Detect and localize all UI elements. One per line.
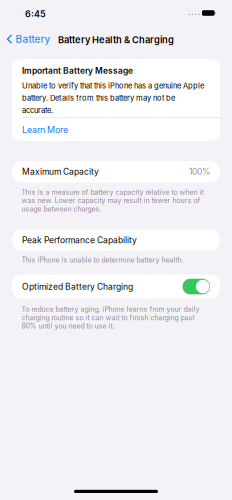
button[interactable]: Optimized Battery Charging: [182, 279, 210, 294]
staticText: Learn More: [22, 124, 68, 135]
staticText: Optimized Battery Charging: [22, 281, 133, 292]
staticText: Battery Health & Charging: [58, 34, 174, 45]
staticText: Battery: [15, 33, 50, 45]
staticText: Maximum Capacity: [22, 167, 99, 177]
staticText: 6:45: [25, 9, 46, 19]
staticText: To reduce battery aging, iPhone learns f…: [21, 305, 199, 330]
staticText: Peak Performance Capability: [22, 235, 137, 245]
staticText: Important Battery Message: [22, 65, 133, 76]
staticText: This is a measure of battery capacity re…: [21, 188, 203, 213]
staticText: 100%: [189, 167, 210, 177]
staticText: This iPhone is unable to determine batte…: [21, 256, 183, 264]
staticText: Unable to verify that this iPhone has a …: [22, 81, 204, 115]
button[interactable]: Learn More: [22, 116, 212, 141]
button[interactable]: Battery: [0, 26, 56, 45]
